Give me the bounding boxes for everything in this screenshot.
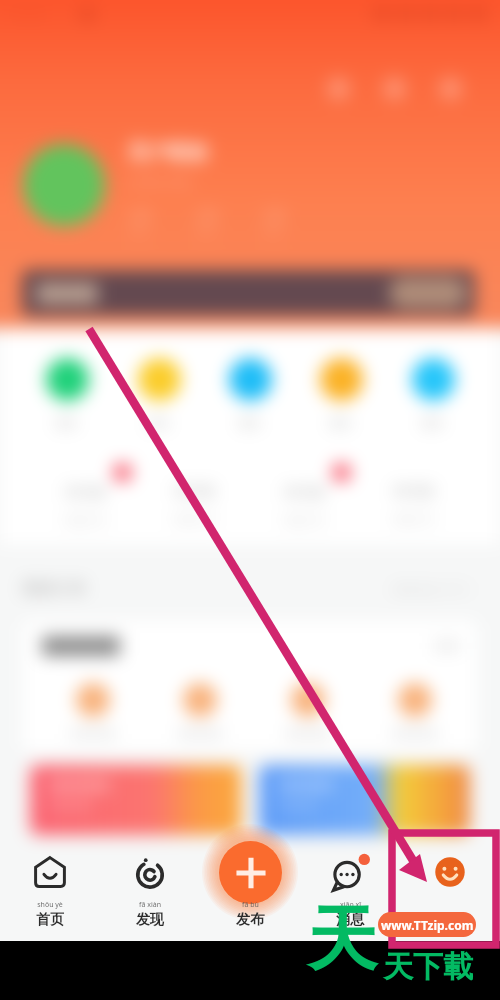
button[interactable]: Profile	[400, 850, 500, 941]
staticText: xiāo xī	[340, 900, 361, 910]
button[interactable]: Publish	[200, 850, 300, 941]
button[interactable]	[439, 77, 462, 100]
button[interactable]: 服务	[298, 328, 384, 440]
button[interactable]	[259, 765, 470, 835]
staticText: 服务	[148, 416, 170, 430]
staticText: fā bù	[242, 900, 259, 910]
button[interactable]	[30, 765, 241, 835]
staticText: 天下載	[383, 948, 473, 986]
button[interactable]	[45, 683, 141, 738]
button[interactable]	[383, 77, 406, 100]
button[interactable]: 待付款	[145, 440, 245, 545]
button[interactable]	[327, 77, 350, 100]
button[interactable]	[260, 683, 356, 738]
button[interactable]: 服务	[390, 328, 476, 440]
button[interactable]: Discover	[100, 850, 200, 941]
staticText: shǒu yè	[37, 900, 63, 910]
button[interactable]: 服务	[207, 328, 293, 440]
other: Discover	[132, 854, 168, 890]
button[interactable]	[23, 144, 105, 226]
staticText: 天	[307, 896, 377, 984]
staticText: www.TTzip.com	[381, 917, 474, 933]
button[interactable]: Home	[0, 850, 100, 941]
staticText: 消息	[336, 911, 364, 929]
staticText: 首页	[36, 911, 64, 929]
staticText: 待付款	[174, 483, 216, 501]
button[interactable]: Publish	[205, 827, 295, 917]
button[interactable]: 待付款	[255, 440, 355, 545]
staticText: 发布	[236, 911, 264, 929]
staticText: fā xiàn	[139, 900, 161, 910]
button[interactable]: 待付款	[36, 440, 136, 545]
other: Messages	[329, 851, 371, 893]
button[interactable]: 服务	[24, 328, 110, 440]
button[interactable]	[22, 270, 475, 316]
button[interactable]	[22, 620, 478, 752]
button[interactable]	[152, 683, 248, 738]
button[interactable]	[367, 683, 463, 738]
other: Home	[32, 854, 68, 890]
button[interactable]: Messages	[300, 850, 400, 941]
staticText: 用户昵称	[128, 140, 208, 165]
staticText: 收藏记录	[173, 512, 217, 526]
button[interactable]: 服务	[116, 328, 202, 440]
other: Profile	[434, 856, 466, 888]
staticText: 发现	[136, 911, 164, 929]
